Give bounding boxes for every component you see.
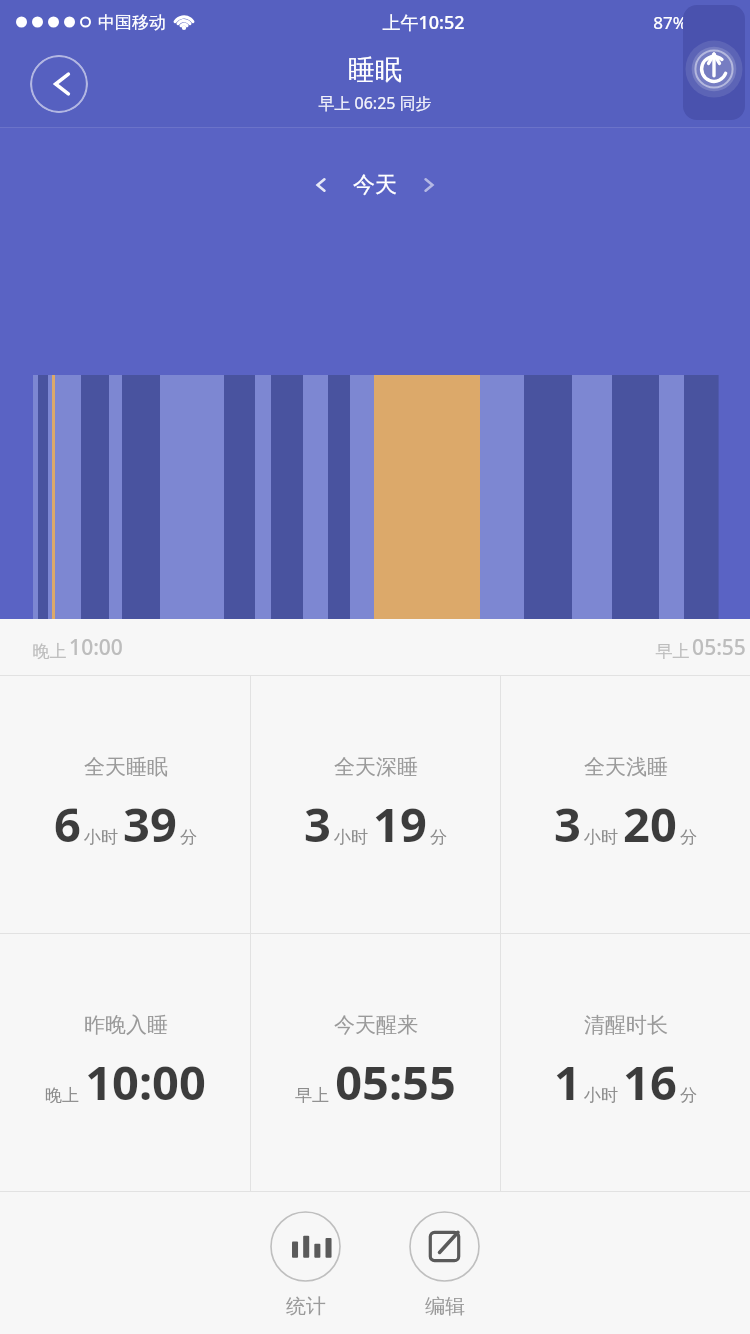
staticText: 3	[554, 792, 581, 856]
button[interactable]: 编辑	[401, 1211, 488, 1319]
staticText: 87%	[653, 11, 687, 34]
staticText: 1	[554, 1050, 581, 1114]
staticText: 小时	[584, 1085, 618, 1106]
staticText: 20	[623, 792, 677, 856]
staticText: 早上	[295, 1085, 329, 1106]
staticText: 分	[680, 827, 697, 848]
staticText: 全天浅睡	[584, 754, 668, 780]
staticText: 19	[373, 792, 427, 856]
staticText: 晚上	[45, 1085, 79, 1106]
staticText: 全天睡眠	[84, 754, 168, 780]
staticText: 清醒时长	[584, 1012, 668, 1038]
staticText: 10:00	[85, 1050, 206, 1114]
staticText: 16	[623, 1050, 677, 1114]
staticText: 全天深睡	[334, 754, 418, 780]
staticText: 小时	[584, 827, 618, 848]
button[interactable]: 全天浅睡	[501, 676, 750, 933]
staticText: 晚上	[30, 639, 69, 662]
staticText: 统计	[286, 1294, 326, 1319]
staticText: 今天	[353, 171, 397, 199]
staticText: 睡眠	[348, 53, 402, 87]
staticText: 3	[304, 792, 331, 856]
staticText: 早上	[653, 639, 692, 662]
button[interactable]: Back	[30, 55, 88, 113]
staticText: 分	[430, 827, 447, 848]
button[interactable]: 今天	[343, 171, 407, 199]
button[interactable]: 全天深睡	[251, 676, 500, 933]
button[interactable]: 清醒时长	[501, 934, 750, 1191]
staticText: 10:00	[69, 633, 123, 662]
staticText: 中国移动	[98, 12, 166, 33]
staticText: 05:55	[692, 633, 746, 662]
staticText: 今天醒来	[334, 1012, 418, 1038]
button[interactable]: 昨晚入睡	[0, 934, 250, 1191]
staticText: 分	[680, 1085, 697, 1106]
staticText: 6	[54, 792, 81, 856]
staticText: 早上 06:25 同步	[318, 92, 432, 114]
button[interactable]: Previous day	[299, 163, 343, 207]
staticText: 小时	[84, 827, 118, 848]
staticText: 上午10:52	[382, 10, 465, 35]
button[interactable]: Next day	[407, 163, 451, 207]
staticText: 分	[180, 827, 197, 848]
button[interactable]: 统计	[262, 1211, 349, 1319]
staticText: 05:55	[335, 1050, 456, 1114]
button[interactable]: Sync	[683, 5, 745, 120]
staticText: 昨晚入睡	[84, 1012, 168, 1038]
button[interactable]: 全天睡眠	[0, 676, 250, 933]
staticText: 小时	[334, 827, 368, 848]
staticText: 39	[123, 792, 177, 856]
button[interactable]: 今天醒来	[251, 934, 500, 1191]
staticText: 编辑	[425, 1294, 465, 1319]
